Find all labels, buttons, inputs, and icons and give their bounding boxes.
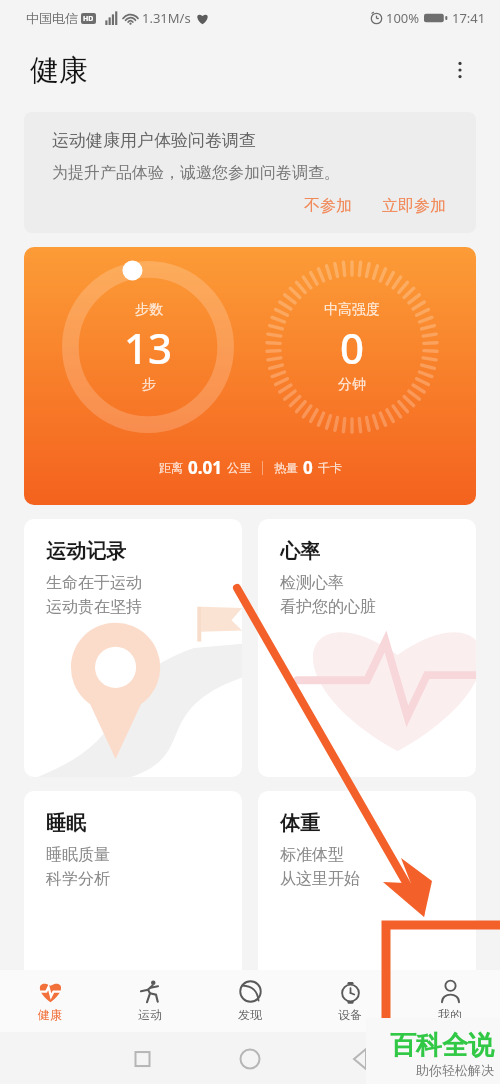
staticText: 运动记录	[46, 539, 126, 564]
staticText: 发现	[238, 1007, 262, 1022]
staticText: 睡眠	[46, 811, 86, 836]
button[interactable]: 运动记录	[24, 519, 242, 777]
staticText: 步	[142, 376, 156, 394]
staticText: 0	[340, 319, 365, 376]
button[interactable]: 健康	[0, 970, 100, 1032]
staticText: 我的	[438, 1007, 462, 1022]
staticText: 中国电信	[26, 10, 78, 26]
staticText: 公里	[227, 460, 251, 475]
button[interactable]: 步数	[24, 247, 476, 505]
button[interactable]: 立即参加	[376, 191, 452, 221]
staticText: 17:41	[452, 9, 486, 27]
button[interactable]: 发现	[200, 970, 300, 1032]
staticText: 健康	[30, 52, 88, 89]
staticText: 0.01	[188, 456, 222, 479]
staticText: HD	[83, 14, 94, 24]
staticText: 分钟	[338, 376, 366, 394]
staticText: 体重	[280, 811, 320, 836]
staticText: 0	[303, 456, 313, 479]
staticText: 不参加	[304, 196, 352, 216]
button[interactable]: 我的	[400, 970, 500, 1032]
button[interactable]: 运动	[100, 970, 200, 1032]
staticText: 千卡	[318, 460, 342, 475]
staticText: 中高强度	[324, 301, 380, 319]
button[interactable]: 不参加	[298, 191, 358, 221]
staticText: 距离	[159, 460, 183, 475]
button[interactable]: More options	[438, 48, 482, 92]
staticText: 1.31M/s	[142, 9, 191, 27]
staticText: 热量	[274, 460, 298, 475]
staticText: 标准体型 从这里开始	[280, 845, 360, 889]
staticText: 检测心率 看护您的心脏	[280, 573, 376, 617]
button[interactable]: 睡眠	[24, 791, 242, 1049]
staticText: 健康	[38, 1007, 62, 1022]
staticText: 设备	[338, 1007, 362, 1022]
staticText: 步数	[135, 301, 163, 319]
staticText: 13	[124, 319, 173, 376]
staticText: 生命在于运动 运动贵在坚持	[46, 573, 142, 617]
staticText: 助你轻松解决	[416, 1062, 494, 1078]
button[interactable]: 心率	[258, 519, 476, 777]
staticText: 运动健康用户体验问卷调查	[52, 130, 256, 151]
staticText: 为提升产品体验，诚邀您参加问卷调查。	[52, 163, 340, 183]
button[interactable]: 设备	[300, 970, 400, 1032]
button[interactable]: 体重	[258, 791, 476, 1049]
staticText: 运动	[138, 1007, 162, 1022]
staticText: 百科全说	[390, 1029, 494, 1062]
staticText: 睡眠质量 科学分析	[46, 845, 110, 889]
staticText: 立即参加	[382, 196, 446, 216]
button[interactable]: 运动健康用户体验问卷调查	[24, 112, 476, 233]
staticText: 心率	[280, 539, 320, 564]
staticText: 100%	[386, 9, 420, 27]
